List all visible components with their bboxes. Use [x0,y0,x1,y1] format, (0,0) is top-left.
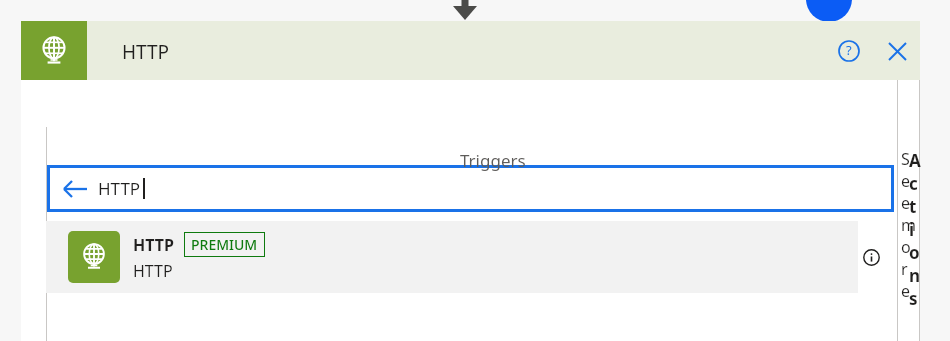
button[interactable]: Info [855,241,887,273]
staticText: HTTP [133,260,173,282]
button[interactable]: Close [881,35,913,67]
staticText: ? [846,41,852,59]
staticText: Triggers [460,149,526,172]
staticText: HTTP [98,177,141,200]
staticText: HTTP [133,234,174,256]
button[interactable]: HTTP [46,221,858,293]
staticText: PREMIUM [191,235,258,254]
staticText: HTTP [122,39,170,65]
button[interactable]: Triggers [88,140,897,193]
button[interactable]: HTTP [47,165,894,212]
button[interactable]: Help [833,35,865,67]
